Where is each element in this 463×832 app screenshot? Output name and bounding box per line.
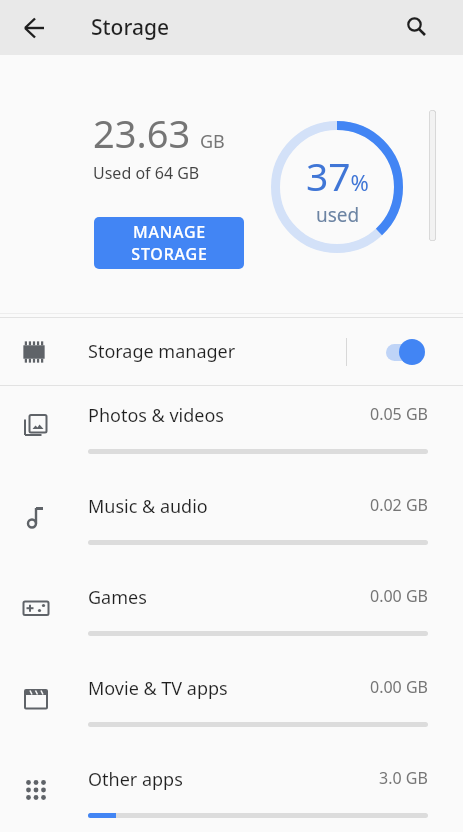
staticText: Photos & videos [88, 403, 224, 428]
button[interactable] [11, 4, 59, 52]
button[interactable]: Photos & videos [0, 386, 463, 477]
staticText: 0.00 GB [370, 676, 428, 698]
staticText: Movie & TV apps [88, 676, 228, 701]
staticText: 0.00 GB [370, 585, 428, 607]
button[interactable]: Games [0, 568, 463, 659]
staticText: Games [88, 585, 147, 610]
staticText: 3.0 GB [379, 767, 428, 789]
staticText: Used of 64 GB [93, 162, 200, 184]
staticText: 37% [306, 149, 369, 202]
staticText: 23.63 GB [93, 107, 225, 159]
staticText: 0.05 GB [370, 403, 428, 425]
staticText: 0.02 GB [370, 494, 428, 516]
staticText: MANAGE STORAGE [131, 221, 208, 265]
button[interactable]: Storage manager [0, 318, 463, 385]
staticText: used [316, 202, 360, 228]
staticText: Storage [91, 13, 169, 42]
button[interactable] [385, 339, 425, 365]
button[interactable]: Movie & TV apps [0, 659, 463, 750]
button[interactable]: MANAGE STORAGE [94, 217, 244, 269]
staticText: Storage manager [88, 339, 236, 364]
staticText: Other apps [88, 767, 183, 792]
button[interactable] [397, 8, 437, 48]
button[interactable]: Music & audio [0, 477, 463, 568]
staticText: Music & audio [88, 494, 208, 519]
button[interactable]: Other apps [0, 750, 463, 832]
